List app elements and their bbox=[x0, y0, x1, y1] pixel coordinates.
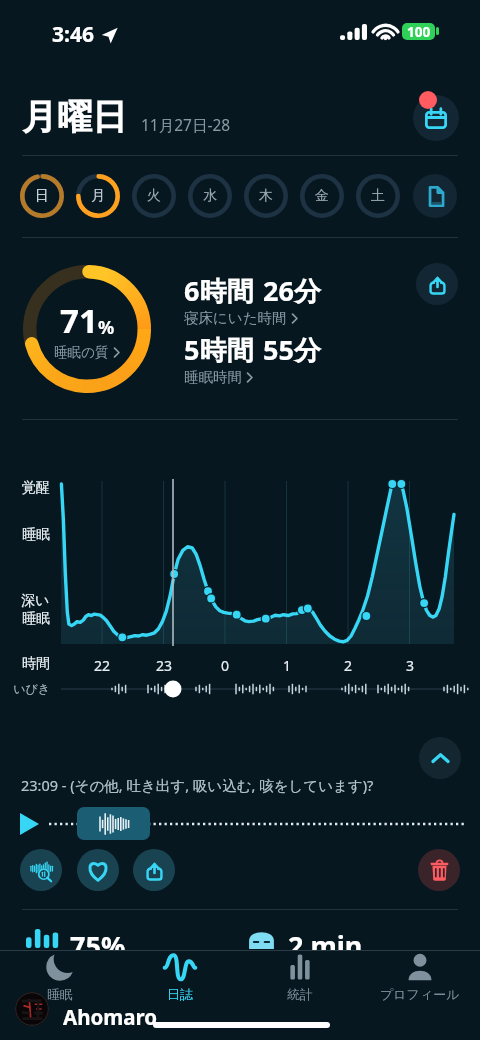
staticText: 月 bbox=[91, 187, 105, 205]
staticText: 時間 bbox=[20, 655, 50, 673]
staticText: 睡眠の質 bbox=[54, 344, 109, 361]
button[interactable]: 土 bbox=[356, 174, 400, 218]
button[interactable]: 月 bbox=[76, 174, 120, 218]
staticText: 6時間 bbox=[184, 272, 254, 309]
button[interactable]: 71 bbox=[23, 265, 151, 393]
button[interactable]: Analyze sound bbox=[20, 849, 62, 891]
button[interactable]: 睡眠時間 bbox=[184, 368, 253, 386]
staticText: 11月27日-28 bbox=[141, 114, 231, 135]
button[interactable]: 寝床にいた時間 bbox=[184, 309, 298, 327]
staticText: 3 bbox=[390, 656, 430, 675]
button[interactable]: 水 bbox=[188, 174, 232, 218]
staticText: 睡眠 bbox=[22, 610, 50, 628]
staticText: 26分 bbox=[263, 272, 321, 309]
button[interactable]: 火 bbox=[132, 174, 176, 218]
staticText: 寝床にいた時間 bbox=[184, 309, 287, 327]
button[interactable]: 金 bbox=[300, 174, 344, 218]
staticText: 日 bbox=[35, 187, 49, 205]
staticText: 睡眠 bbox=[20, 526, 50, 544]
staticText: 1 bbox=[267, 656, 307, 675]
staticText: 睡眠時間 bbox=[184, 368, 242, 386]
staticText: プロフィール bbox=[380, 986, 460, 1001]
staticText: 水 bbox=[203, 187, 217, 205]
button[interactable]: Share bbox=[416, 263, 458, 305]
staticText: 2 bbox=[328, 656, 368, 675]
staticText: いびき bbox=[10, 681, 50, 696]
button[interactable]: 統計 bbox=[240, 953, 360, 1001]
button[interactable]: 日 bbox=[20, 174, 64, 218]
staticText: 金 bbox=[315, 187, 329, 205]
staticText: 75% bbox=[70, 927, 126, 964]
button[interactable]: 日誌 bbox=[120, 953, 240, 1001]
button[interactable]: Notes bbox=[413, 174, 457, 218]
button[interactable]: Favorite bbox=[77, 849, 119, 891]
staticText: % bbox=[98, 315, 115, 340]
button[interactable]: Share recording bbox=[133, 849, 175, 891]
button[interactable]: Collapse bbox=[419, 737, 461, 779]
button[interactable]: 睡眠 bbox=[0, 953, 120, 1001]
staticText: 22 bbox=[82, 656, 122, 675]
button[interactable]: 木 bbox=[244, 174, 288, 218]
staticText: Ahomaro bbox=[63, 1003, 158, 1031]
staticText: 5時間 bbox=[184, 331, 254, 368]
staticText: 0 bbox=[205, 656, 245, 675]
button[interactable]: プロフィール bbox=[360, 953, 480, 1001]
staticText: 木 bbox=[259, 187, 273, 205]
staticText: 55分 bbox=[263, 331, 321, 368]
staticText: 土 bbox=[371, 187, 385, 205]
staticText: 23 bbox=[144, 656, 184, 675]
staticText: 日誌 bbox=[167, 986, 193, 1001]
staticText: 71 bbox=[60, 298, 98, 343]
button[interactable]: Delete bbox=[418, 849, 460, 891]
staticText: 覚醒 bbox=[20, 479, 50, 497]
button[interactable]: Calendar bbox=[413, 95, 459, 141]
staticText: 3:46 bbox=[52, 20, 94, 49]
staticText: 2 min bbox=[288, 927, 363, 964]
staticText: 睡眠 bbox=[47, 986, 73, 1001]
staticText: 統計 bbox=[287, 986, 313, 1001]
staticText: 深い bbox=[21, 592, 50, 610]
staticText: 100 bbox=[407, 23, 431, 40]
staticText: 月曜日 bbox=[22, 95, 127, 139]
staticText: 23:09 - (その他, 吐き出す, 吸い込む, 咳をしています)? bbox=[21, 775, 374, 795]
staticText: 火 bbox=[147, 187, 161, 205]
